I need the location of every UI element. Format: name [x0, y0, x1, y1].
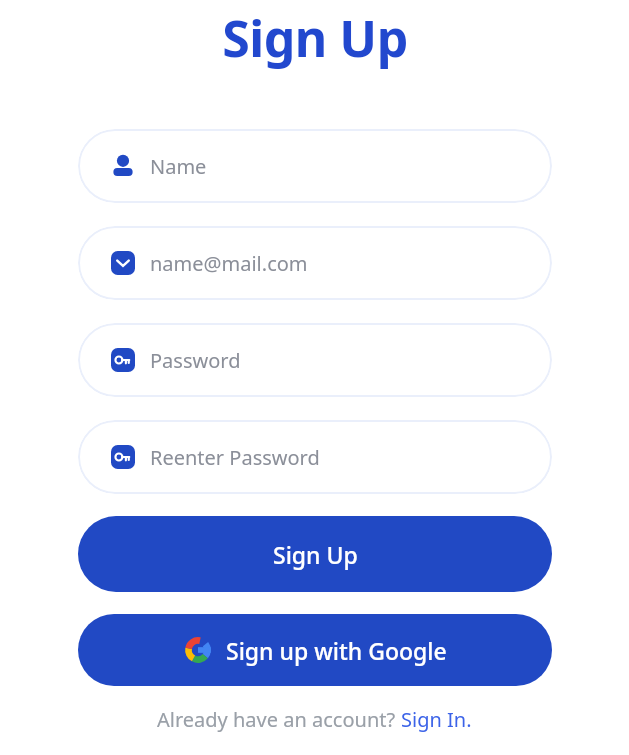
staticText: Sign Up — [273, 539, 358, 570]
staticText: Password — [150, 347, 241, 374]
staticText: Sign In. — [401, 706, 472, 733]
button[interactable]: Sign In. — [401, 706, 472, 733]
button[interactable]: Reenter Password — [78, 420, 552, 494]
button[interactable]: Sign Up — [78, 516, 552, 592]
staticText: name@mail.com — [150, 250, 308, 277]
staticText: Sign up with Google — [226, 635, 447, 666]
staticText: Already have an account? — [157, 706, 401, 733]
staticText: Sign Up — [222, 4, 408, 72]
button[interactable]: name@mail.com — [78, 226, 552, 300]
staticText: Reenter Password — [150, 444, 320, 471]
staticText: Name — [150, 153, 207, 180]
button[interactable]: Password — [78, 323, 552, 397]
other: Google logo — [184, 636, 212, 664]
button[interactable]: Google logo — [78, 614, 552, 686]
button[interactable]: Name — [78, 129, 552, 203]
